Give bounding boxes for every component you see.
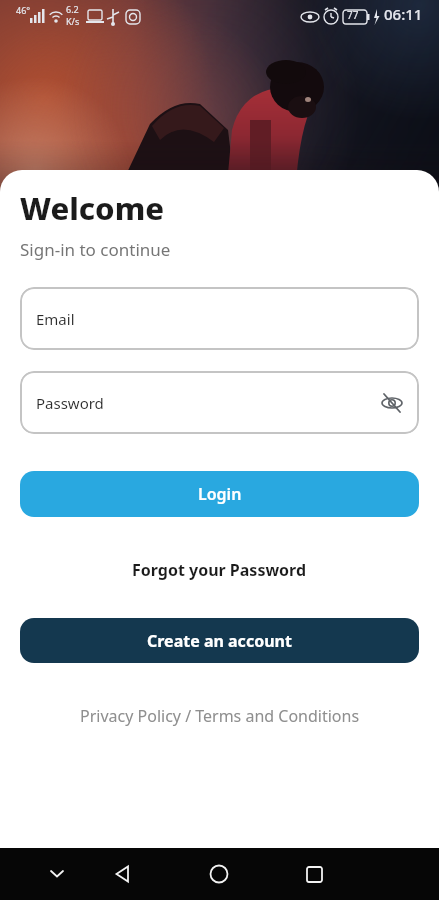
button[interactable]: Login — [20, 471, 419, 517]
staticText: 46° — [16, 4, 31, 16]
staticText: Privacy Policy / Terms and Conditions — [80, 705, 360, 727]
button[interactable]: Forgot your Password — [0, 559, 439, 581]
staticText: Forgot your Password — [132, 559, 307, 581]
staticText: Create an account — [147, 630, 292, 652]
staticText: Sign-in to continue — [20, 238, 171, 261]
button[interactable] — [97, 848, 149, 900]
staticText: 77 — [347, 8, 359, 22]
button[interactable] — [288, 848, 340, 900]
button[interactable]: Password — [20, 371, 419, 434]
staticText: 06:11 — [384, 4, 423, 24]
button[interactable]: Email — [20, 287, 419, 350]
staticText: Login — [198, 483, 242, 505]
staticText: 6.2 — [66, 3, 79, 15]
button[interactable] — [193, 848, 245, 900]
staticText: Password — [36, 393, 104, 413]
staticText: Welcome — [20, 187, 165, 229]
button[interactable] — [31, 848, 83, 900]
button[interactable]: Create an account — [20, 618, 419, 663]
button[interactable]: Privacy Policy / Terms and Conditions — [0, 705, 439, 727]
staticText: K/s — [66, 15, 80, 27]
staticText: Email — [36, 309, 75, 329]
